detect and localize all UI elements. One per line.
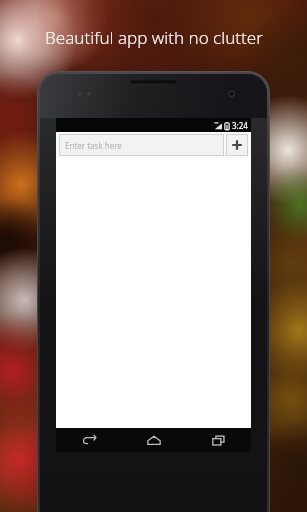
staticText: 3:24 (232, 120, 248, 131)
button[interactable]: Home (121, 428, 186, 452)
button[interactable]: Back (56, 428, 121, 452)
staticText: Enter task here (65, 140, 122, 151)
staticText: Beautiful app with no clutter (45, 26, 263, 49)
button[interactable]: Enter task here (59, 134, 224, 156)
button[interactable]: Recent apps (186, 428, 251, 452)
button[interactable]: Add task (226, 134, 248, 156)
